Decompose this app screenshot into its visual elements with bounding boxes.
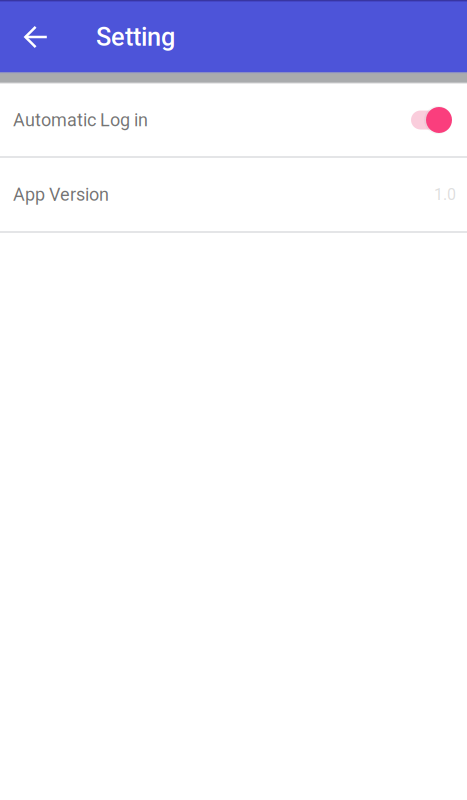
staticText: Setting — [96, 22, 175, 52]
button[interactable]: Automatic Log in — [0, 84, 467, 156]
staticText: App Version — [13, 184, 109, 205]
staticText: 1.0 — [434, 185, 456, 204]
button[interactable]: App Version — [0, 158, 467, 231]
staticText: Automatic Log in — [13, 109, 148, 131]
button[interactable]: Back — [0, 2, 72, 72]
